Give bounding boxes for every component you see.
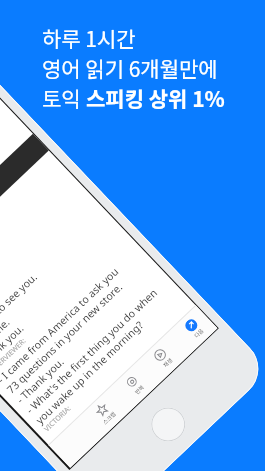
staticText: 반복	[133, 383, 146, 396]
staticText: Thank you.	[0, 321, 27, 369]
staticText: 73 questions in your new store.	[4, 279, 126, 396]
staticText: 하루 1시간	[42, 23, 136, 53]
staticText: Welcome.	[0, 315, 13, 359]
staticText: - What's the first thing you do when	[23, 285, 160, 417]
staticText: - Thank you.	[13, 354, 67, 406]
other: Home	[144, 400, 192, 448]
button[interactable]: 다음	[183, 317, 206, 340]
staticText: 재생	[161, 356, 175, 369]
staticText: INTERVIEWER:	[0, 336, 28, 376]
staticText: VICTORIA:	[42, 403, 74, 434]
staticText: 다음	[192, 326, 206, 340]
button[interactable]: 재생	[152, 346, 175, 370]
staticText: It's good to see you.	[0, 269, 40, 348]
staticText: - I came from America to ask you	[0, 264, 121, 386]
button[interactable]: 스크랩	[92, 400, 118, 426]
staticText: 스크랩	[101, 410, 118, 426]
staticText: you wake up in the morning?	[33, 317, 147, 427]
staticText: 영어 읽기 6개월만에	[42, 53, 218, 83]
button[interactable]: 반복	[123, 373, 147, 397]
staticText: 스피킹 상위 1%	[86, 83, 225, 113]
staticText: 토익	[42, 83, 86, 113]
